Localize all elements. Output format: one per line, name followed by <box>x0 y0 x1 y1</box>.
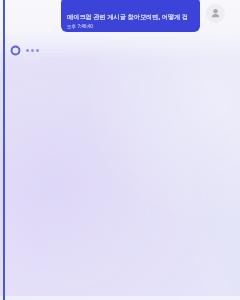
button[interactable]: Typing <box>26 46 39 54</box>
staticText: 메이크업 관련 게시글 찾아보려면, 어떻게 검색해야 해? <box>67 12 194 20</box>
button[interactable]: 메이크업 관련 게시글 찾아보려면, 어떻게 검색해야 해? <box>61 0 200 32</box>
button[interactable]: Profile <box>206 4 225 23</box>
staticText: 오후 7:46:40 <box>67 23 93 29</box>
button[interactable]: Status <box>9 44 21 56</box>
